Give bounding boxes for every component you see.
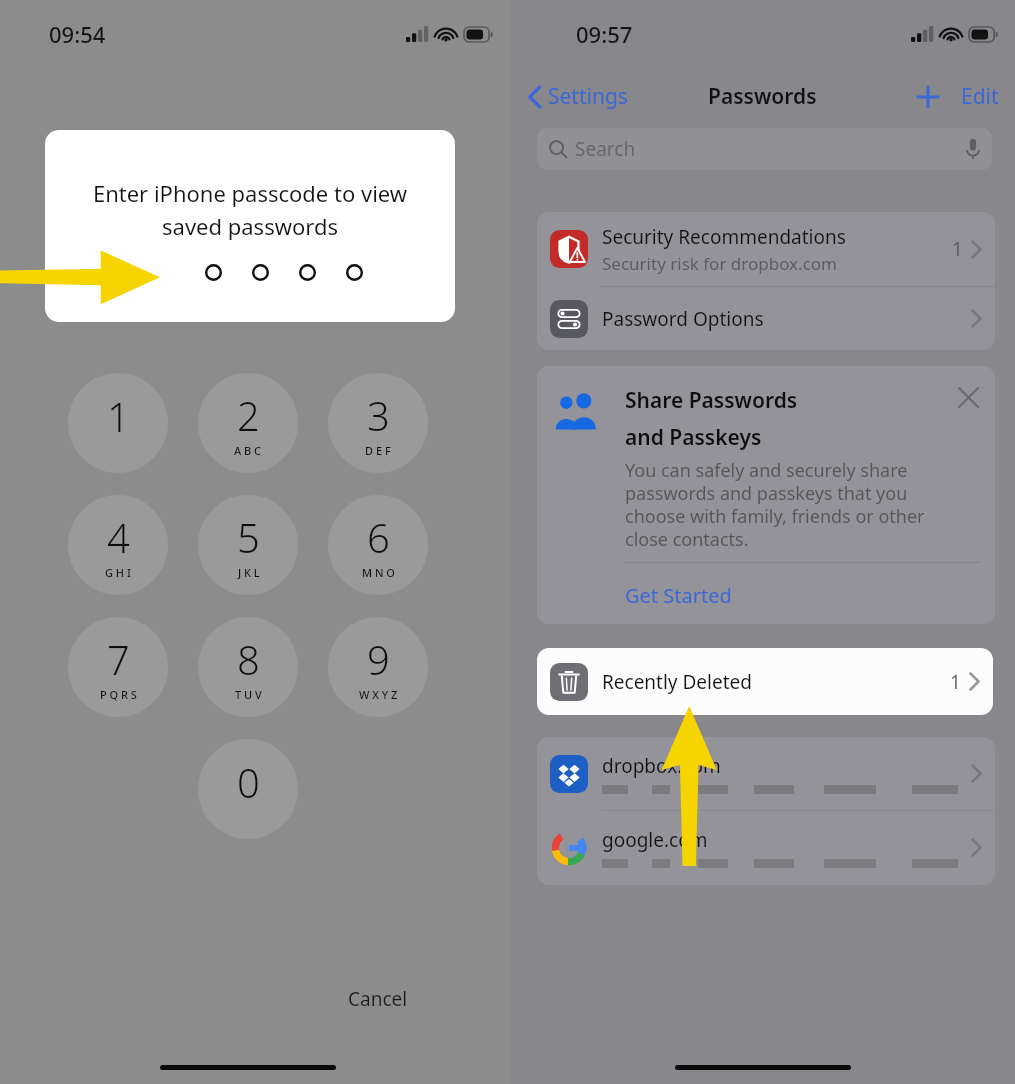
- button[interactable]: 0: [198, 739, 298, 839]
- staticText: Recently Deleted: [602, 669, 950, 695]
- staticText: 1: [950, 669, 961, 695]
- button[interactable]: dropbox.com: [537, 737, 995, 810]
- staticText: M N O: [362, 565, 395, 580]
- button[interactable]: Security Recommendations: [537, 212, 995, 286]
- staticText: 7: [107, 632, 130, 686]
- button[interactable]: Add password: [911, 80, 945, 114]
- staticText: Get Started: [625, 582, 732, 609]
- staticText: dropbox.com: [602, 753, 721, 779]
- button[interactable]: Search: [537, 128, 992, 170]
- staticText: 1: [952, 236, 963, 262]
- staticText: D E F: [365, 443, 391, 458]
- button[interactable]: Recently Deleted: [537, 648, 993, 715]
- staticText: 3: [367, 388, 390, 442]
- staticText: Password Options: [602, 306, 971, 332]
- staticText: Passwords: [708, 82, 817, 111]
- staticText: google.com: [602, 827, 708, 853]
- staticText: W X Y Z: [359, 687, 398, 702]
- staticText: 1: [107, 389, 130, 443]
- button[interactable]: Dismiss: [951, 380, 985, 414]
- button[interactable]: 8: [198, 617, 298, 717]
- button[interactable]: Get Started: [625, 572, 740, 615]
- button[interactable]: 3: [328, 373, 428, 473]
- button[interactable]: 9: [328, 617, 428, 717]
- staticText: 6: [367, 510, 390, 564]
- button[interactable]: Cancel: [318, 982, 438, 1016]
- staticText: G H I: [105, 565, 131, 580]
- staticText: 09:54: [49, 19, 106, 49]
- staticText: Cancel: [348, 986, 408, 1012]
- staticText: T U V: [235, 687, 262, 702]
- staticText: You can safely and securely share passwo…: [625, 458, 945, 551]
- staticText: P Q R S: [100, 687, 137, 702]
- staticText: J K L: [238, 565, 260, 580]
- button[interactable]: google.com: [537, 811, 995, 884]
- staticText: Enter iPhone passcode to view saved pass…: [45, 178, 455, 241]
- button[interactable]: 4: [68, 495, 168, 595]
- staticText: Security risk for dropbox.com: [602, 252, 838, 275]
- staticText: Security Recommendations: [602, 224, 846, 250]
- button[interactable]: 6: [328, 495, 428, 595]
- button[interactable]: 7: [68, 617, 168, 717]
- staticText: 4: [107, 510, 130, 564]
- staticText: Search: [575, 136, 636, 162]
- staticText: 0: [237, 755, 260, 809]
- staticText: A B C: [234, 443, 262, 458]
- button[interactable]: Settings: [522, 78, 634, 115]
- button[interactable]: 1: [68, 373, 168, 473]
- staticText: 9: [367, 632, 390, 686]
- staticText: 8: [237, 632, 260, 686]
- staticText: 5: [237, 510, 260, 564]
- staticText: Settings: [548, 82, 628, 111]
- staticText: 09:57: [576, 19, 633, 49]
- button[interactable]: Password Options: [537, 287, 995, 350]
- staticText: Share Passwords: [625, 386, 798, 415]
- staticText: and Passkeys: [625, 423, 762, 452]
- button[interactable]: 5: [198, 495, 298, 595]
- button[interactable]: Edit: [957, 78, 1003, 115]
- staticText: Edit: [961, 82, 999, 111]
- button[interactable]: 2: [198, 373, 298, 473]
- staticText: 2: [237, 388, 260, 442]
